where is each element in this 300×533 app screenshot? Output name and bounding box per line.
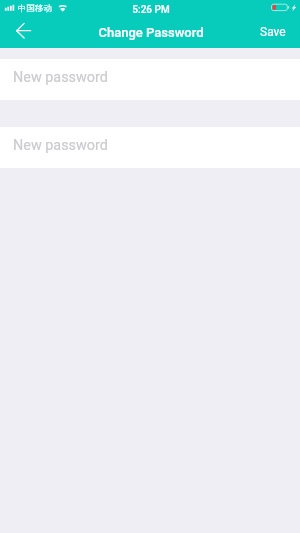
button[interactable]: New password [0, 127, 300, 168]
staticText: Save [260, 25, 286, 39]
button[interactable]: Back [0, 20, 46, 48]
button[interactable]: Save [250, 22, 300, 44]
staticText: 5:26 PM [1, 4, 300, 16]
button[interactable]: New password [0, 59, 300, 100]
staticText: New password [13, 69, 108, 86]
staticText: New password [13, 137, 108, 154]
staticText: Change Password [1, 25, 300, 40]
staticText: 中国移动 [18, 3, 52, 14]
